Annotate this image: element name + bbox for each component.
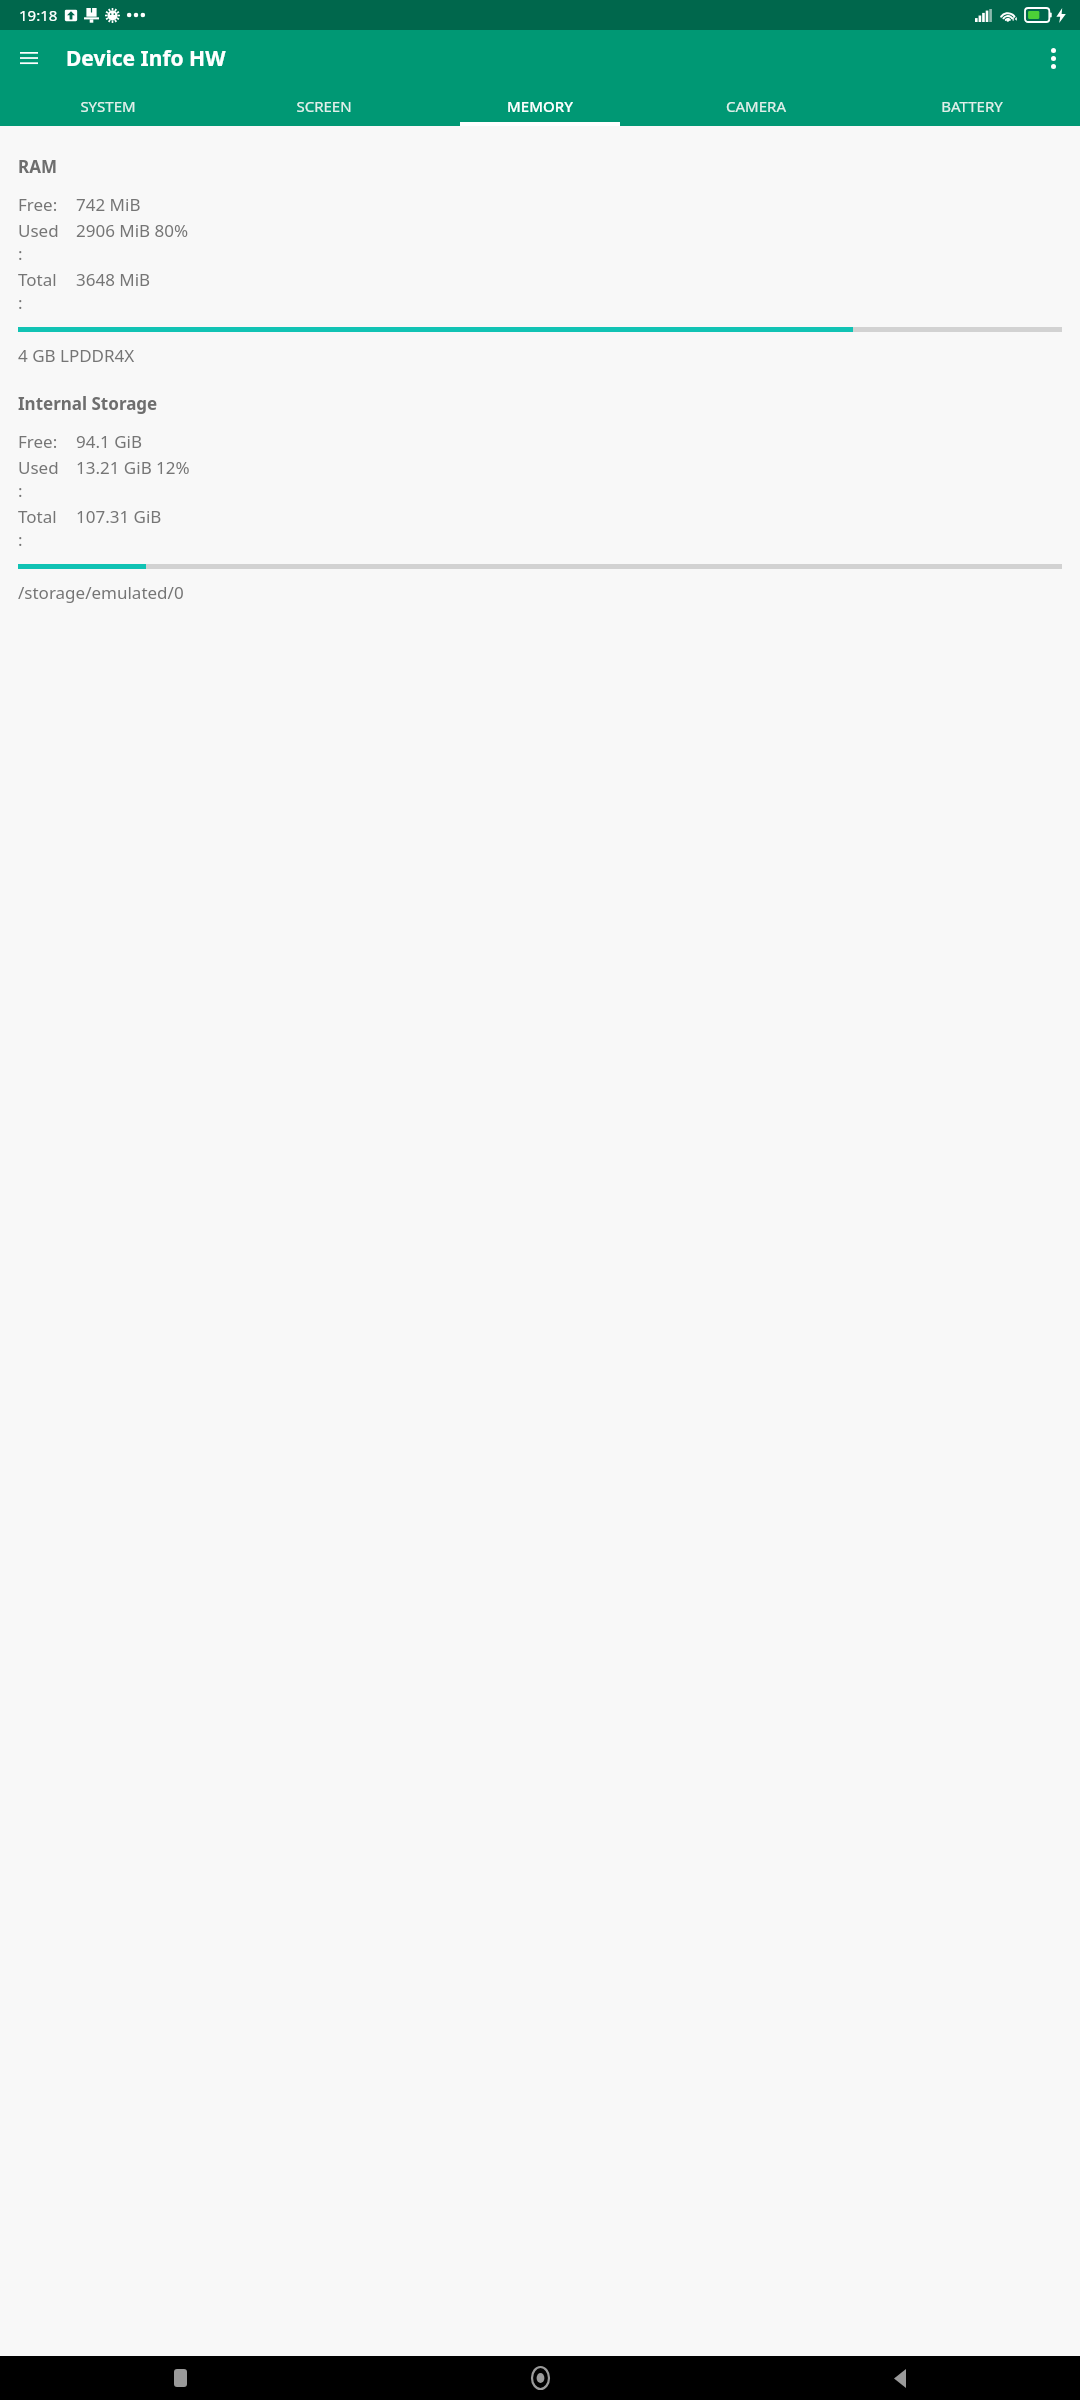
- button[interactable]: Back: [720, 2356, 1080, 2400]
- staticText: 2906 MiB 80%: [76, 219, 189, 242]
- staticText: /storage/emulated/0: [18, 581, 184, 604]
- staticText: 107.31 GiB: [76, 505, 162, 528]
- staticText: 742 MiB: [76, 193, 141, 216]
- button[interactable]: SYSTEM: [0, 86, 216, 126]
- staticText: SYSTEM: [80, 96, 136, 116]
- staticText: Device Info HW: [66, 44, 226, 73]
- staticText: 94.1 GiB: [76, 430, 142, 453]
- staticText: SCREEN: [296, 96, 352, 116]
- staticText: Internal Storage: [18, 392, 158, 415]
- staticText: MEMORY: [507, 96, 573, 116]
- staticText: Used:: [18, 219, 60, 265]
- staticText: Used:: [18, 456, 60, 502]
- button[interactable]: Recent apps: [0, 2356, 360, 2400]
- staticText: 4 GB LPDDR4X: [18, 344, 135, 367]
- button[interactable]: CAMERA: [648, 86, 864, 126]
- staticText: 19:18: [19, 5, 58, 25]
- button[interactable]: Home: [360, 2356, 720, 2400]
- staticText: Total:: [18, 268, 60, 314]
- staticText: BATTERY: [941, 96, 1003, 116]
- staticText: CAMERA: [726, 96, 786, 116]
- button[interactable]: BATTERY: [864, 86, 1080, 126]
- staticText: RAM: [18, 155, 57, 178]
- button[interactable]: Open navigation drawer: [5, 34, 53, 82]
- staticText: Total:: [18, 505, 60, 551]
- button[interactable]: MEMORY: [432, 86, 648, 126]
- staticText: Free:: [18, 193, 58, 216]
- staticText: Free:: [18, 430, 58, 453]
- staticText: 13.21 GiB 12%: [76, 456, 190, 479]
- button[interactable]: SCREEN: [216, 86, 432, 126]
- staticText: 3648 MiB: [76, 268, 151, 291]
- button[interactable]: More options: [1029, 34, 1077, 82]
